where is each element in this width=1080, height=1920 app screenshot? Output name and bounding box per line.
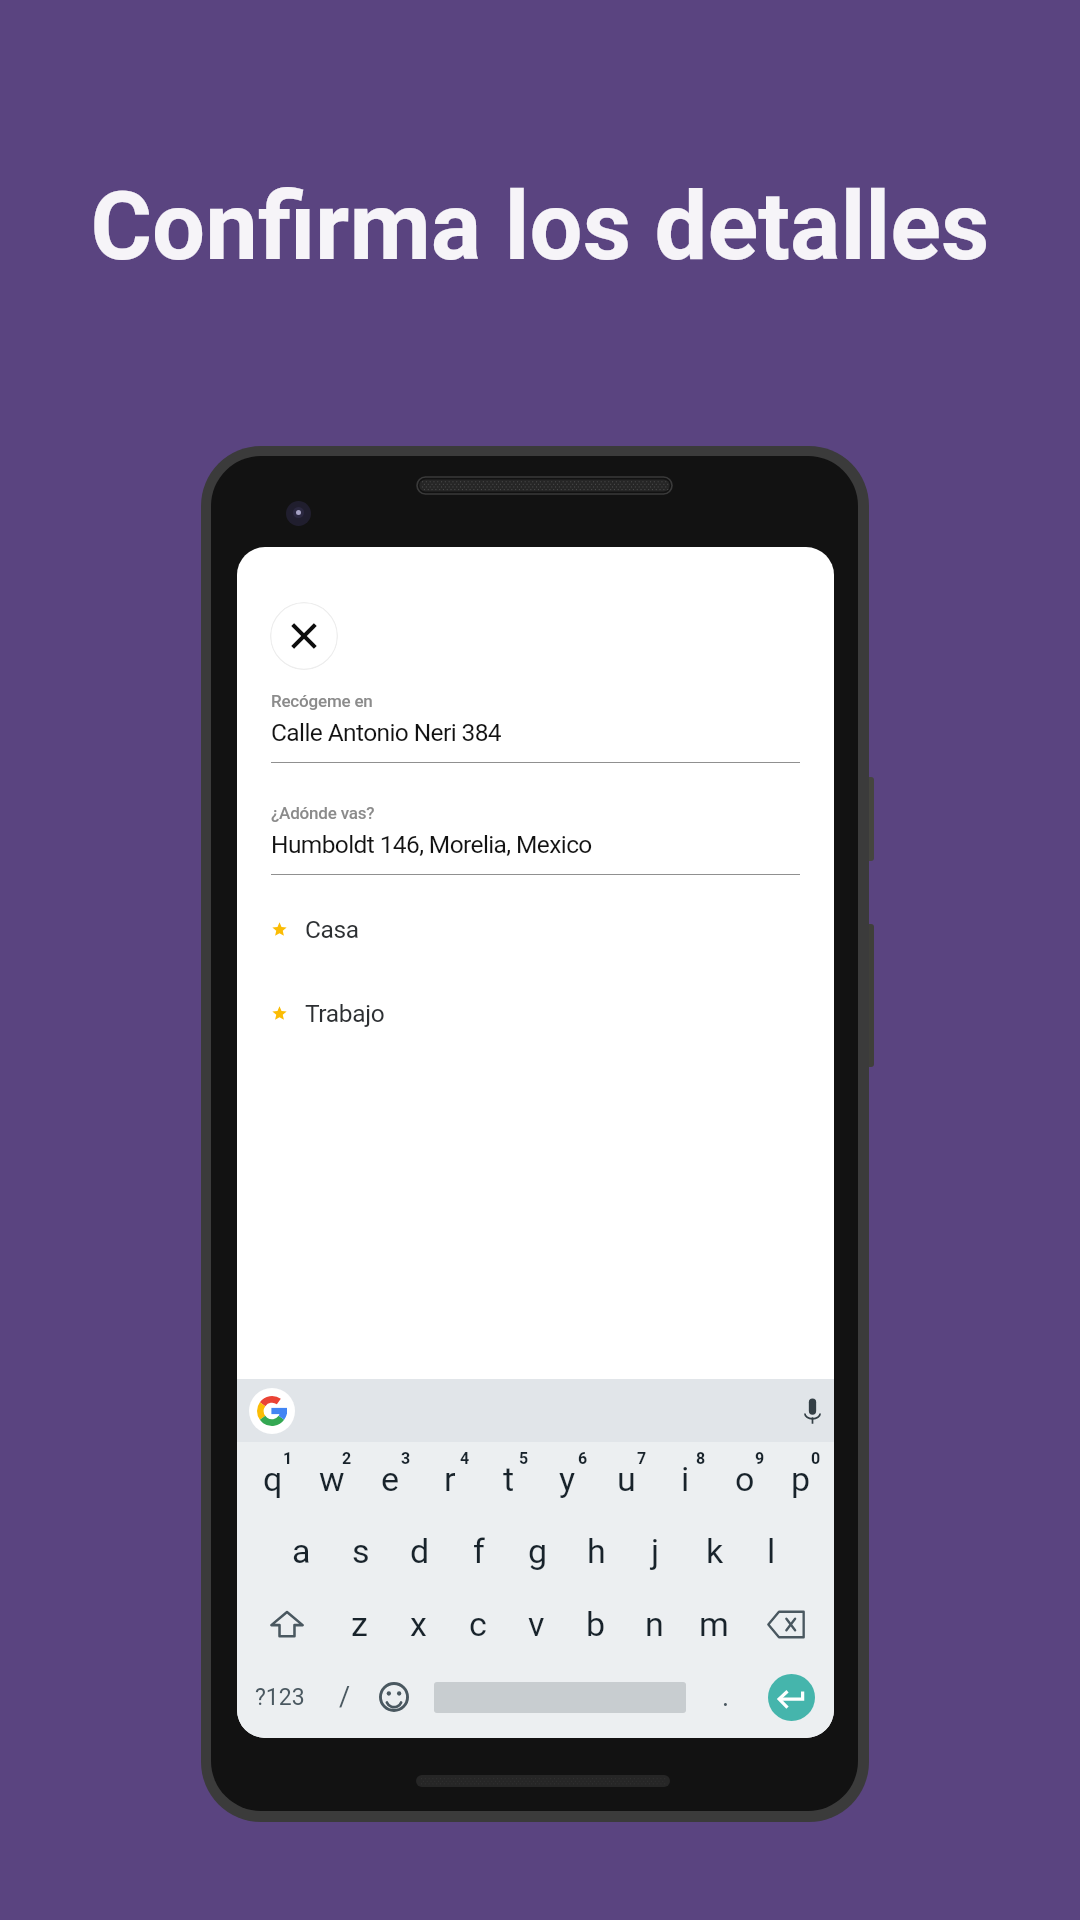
button[interactable]: n (625, 1591, 684, 1657)
staticText: v (528, 1604, 545, 1644)
staticText: Humboldt 146, Morelia, Mexico (271, 830, 592, 859)
staticText: 2 (342, 1449, 352, 1468)
button[interactable]: s (331, 1518, 390, 1584)
button[interactable]: c (448, 1591, 507, 1657)
staticText: s (352, 1531, 370, 1571)
button[interactable]: 2 (302, 1437, 361, 1509)
staticText: d (410, 1531, 430, 1571)
staticText: Confirma los detalles (0, 172, 1080, 282)
button[interactable]: g (508, 1518, 567, 1584)
staticText: f (473, 1531, 485, 1571)
staticText: 6 (578, 1449, 588, 1468)
button[interactable]: Casa (272, 909, 800, 949)
staticText: j (651, 1531, 660, 1571)
staticText: 9 (755, 1449, 765, 1468)
button[interactable]: 5 (479, 1437, 538, 1509)
button[interactable]: k (685, 1518, 744, 1584)
button[interactable]: f (449, 1518, 508, 1584)
staticText: m (699, 1604, 729, 1644)
button[interactable]: 3 (361, 1437, 420, 1509)
button[interactable]: ?123 (249, 1664, 311, 1730)
button[interactable]: Intro (768, 1674, 815, 1721)
staticText: 5 (519, 1449, 529, 1468)
staticText: p (791, 1459, 811, 1499)
button[interactable]: Trabajo (272, 993, 800, 1033)
staticText: a (292, 1531, 311, 1571)
button[interactable]: z (330, 1591, 389, 1657)
button[interactable]: / (325, 1664, 365, 1730)
staticText: . (722, 1681, 730, 1713)
staticText: k (706, 1531, 724, 1571)
button[interactable]: 4 (420, 1437, 479, 1509)
staticText: 3 (401, 1449, 411, 1468)
staticText: Casa (305, 915, 359, 944)
staticText: e (381, 1459, 400, 1499)
staticText: Calle Antonio Neri 384 (271, 718, 501, 747)
staticText: / (339, 1681, 351, 1713)
button[interactable]: 8 (656, 1437, 715, 1509)
button[interactable]: Mayúsculas (243, 1591, 330, 1657)
button[interactable]: x (389, 1591, 448, 1657)
staticText: i (681, 1459, 690, 1499)
button[interactable]: Emoticonos (373, 1664, 414, 1730)
staticText: ¿Adónde vas? (271, 803, 375, 823)
staticText: h (587, 1531, 606, 1571)
button[interactable]: Google (249, 1388, 295, 1434)
staticText: 7 (637, 1449, 647, 1468)
button[interactable]: Espacio (417, 1664, 703, 1730)
staticText: c (469, 1604, 487, 1644)
button[interactable]: ¿Adónde vas? (271, 803, 800, 875)
button[interactable]: h (567, 1518, 626, 1584)
button[interactable]: Recógeme en (271, 691, 800, 763)
button[interactable]: b (566, 1591, 625, 1657)
staticText: y (559, 1459, 576, 1499)
button[interactable]: a (272, 1518, 331, 1584)
staticText: x (410, 1604, 427, 1644)
button[interactable]: j (626, 1518, 685, 1584)
button[interactable]: m (684, 1591, 743, 1657)
button[interactable]: Cerrar (270, 602, 338, 670)
staticText: g (528, 1531, 548, 1571)
staticText: z (351, 1604, 368, 1644)
staticText: r (444, 1459, 456, 1499)
button[interactable]: l (744, 1518, 799, 1584)
button[interactable]: Borrar (743, 1591, 828, 1657)
staticText: b (586, 1604, 606, 1644)
staticText: Recógeme en (271, 691, 373, 711)
button[interactable]: 6 (538, 1437, 597, 1509)
staticText: l (767, 1531, 776, 1571)
button[interactable]: 1 (243, 1437, 302, 1509)
staticText: ?123 (255, 1684, 305, 1711)
button[interactable]: 9 (715, 1437, 774, 1509)
staticText: 8 (696, 1449, 706, 1468)
staticText: 1 (283, 1449, 293, 1468)
staticText: w (319, 1459, 345, 1499)
button[interactable]: 0 (774, 1437, 828, 1509)
staticText: o (735, 1459, 755, 1499)
button[interactable]: Búsqueda por voz (791, 1390, 833, 1432)
staticText: 0 (811, 1449, 821, 1468)
staticText: n (645, 1604, 664, 1644)
staticText: q (263, 1459, 283, 1499)
button[interactable]: 7 (597, 1437, 656, 1509)
staticText: u (617, 1459, 636, 1499)
button[interactable]: . (706, 1664, 746, 1730)
staticText: Trabajo (305, 999, 385, 1028)
button[interactable]: v (507, 1591, 566, 1657)
button[interactable]: d (390, 1518, 449, 1584)
staticText: 4 (460, 1449, 470, 1468)
staticText: t (503, 1459, 515, 1499)
